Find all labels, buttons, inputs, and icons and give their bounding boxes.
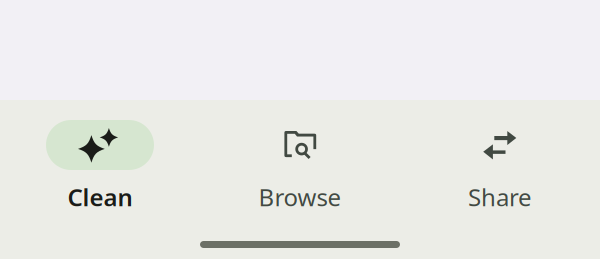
button[interactable]: Share	[400, 100, 600, 225]
staticText: Browse	[258, 181, 341, 213]
staticText: Share	[468, 181, 532, 213]
button[interactable]: Clean	[0, 100, 200, 225]
button[interactable]: Browse	[200, 100, 400, 225]
staticText: Clean	[67, 181, 132, 213]
